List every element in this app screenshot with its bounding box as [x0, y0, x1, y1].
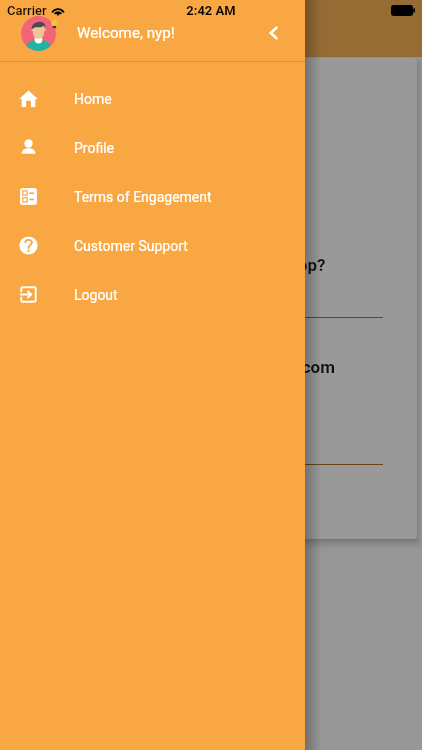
staticText: Profile	[74, 140, 115, 156]
button[interactable]: Close drawer	[259, 19, 287, 47]
staticText: Logout	[74, 287, 118, 303]
button[interactable]: Customer Support	[0, 221, 305, 270]
staticText: Customer Support	[74, 238, 188, 254]
button[interactable]: Profile	[0, 123, 305, 172]
button[interactable]: Home	[0, 74, 305, 123]
staticText: Home	[74, 91, 112, 107]
staticText: Terms of Engagement	[74, 189, 212, 205]
button[interactable]: Close navigation drawer	[0, 0, 422, 750]
staticText: yourx.name.here@mailboxesx.mail.com	[28, 357, 335, 377]
staticText: Do you want to register as a new shop?	[28, 255, 326, 275]
staticText: Carrier	[7, 3, 47, 18]
staticText: 2:42 AM	[0, 3, 422, 18]
button[interactable]: Logout	[0, 270, 305, 319]
staticText: Welcome, nyp!	[77, 24, 175, 42]
button[interactable]: Terms of Engagement	[0, 172, 305, 221]
